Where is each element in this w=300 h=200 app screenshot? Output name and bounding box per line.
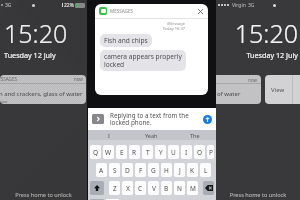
staticText: R <box>132 148 137 157</box>
button[interactable]: S <box>109 163 120 177</box>
staticText: K <box>190 166 195 175</box>
button[interactable]: W <box>103 145 114 159</box>
staticText: Press home to unlock <box>216 191 300 199</box>
button[interactable]: B <box>161 181 172 195</box>
button[interactable]: U <box>168 145 179 159</box>
staticText: S <box>113 166 117 175</box>
button[interactable]: P <box>207 145 214 159</box>
staticText: G <box>151 166 156 175</box>
button[interactable]: H <box>161 163 172 177</box>
staticText: View <box>271 86 285 94</box>
button[interactable]: R <box>129 145 140 159</box>
staticText: H <box>164 166 169 175</box>
staticText: F <box>139 166 143 175</box>
button[interactable]: Close <box>196 7 205 16</box>
button[interactable]: C <box>135 181 146 195</box>
button[interactable]: T <box>142 145 153 159</box>
button[interactable]: I <box>88 130 130 140</box>
button[interactable]: MESSAGES <box>0 75 86 104</box>
button[interactable]: Y <box>155 145 166 159</box>
button[interactable]: V <box>148 181 159 195</box>
staticText: Tuesday 12 July <box>4 50 56 60</box>
staticText: P <box>209 148 213 157</box>
staticText: 15:20 <box>4 16 68 50</box>
button[interactable]: M <box>187 181 198 195</box>
staticText: Replying to a text from the locked phone… <box>110 111 200 127</box>
staticText: Virgin <box>232 2 246 9</box>
button[interactable]: K <box>187 163 198 177</box>
staticText: I <box>185 148 188 157</box>
staticText: L <box>204 166 208 175</box>
staticText: M <box>190 184 196 193</box>
staticText: Fish and chips <box>104 36 148 45</box>
staticText: Today 16:37 <box>95 26 185 31</box>
staticText: E <box>120 148 124 157</box>
staticText: now <box>0 99 8 104</box>
staticText: 15:20 <box>216 16 298 50</box>
staticText: 3G <box>248 2 255 9</box>
staticText: W <box>105 148 112 157</box>
staticText: V <box>152 184 156 193</box>
staticText: B <box>164 184 169 193</box>
staticText: Y <box>159 148 163 157</box>
staticText: O <box>197 148 203 157</box>
staticText: Tuesday 12 July <box>216 50 298 60</box>
staticText: Press home to unlock <box>0 191 87 199</box>
staticText: n and crackers, glass of water <box>0 90 83 98</box>
button[interactable]: Shift <box>90 181 104 195</box>
staticText: Z <box>113 184 117 193</box>
button[interactable]: I <box>181 145 192 159</box>
button[interactable]: G <box>148 163 159 177</box>
button[interactable]: A <box>96 163 107 177</box>
button[interactable]: L <box>200 163 211 177</box>
staticText: MESSAGES <box>0 76 18 82</box>
button[interactable]: The <box>173 130 216 140</box>
staticText: Yeah <box>145 132 158 139</box>
staticText: MESSAGES <box>110 8 134 14</box>
staticText: now <box>74 76 83 82</box>
staticText: X <box>126 184 130 193</box>
button[interactable]: Backspace <box>203 181 214 195</box>
button[interactable]: O <box>194 145 205 159</box>
button[interactable]: X <box>122 181 133 195</box>
button[interactable]: Send <box>203 115 212 124</box>
button[interactable]: now <box>216 75 261 104</box>
button[interactable]: Yeah <box>130 130 173 140</box>
staticText: N <box>177 184 182 193</box>
button[interactable]: Q <box>90 145 101 159</box>
staticText: J <box>179 166 181 175</box>
staticText: T <box>146 148 150 157</box>
staticText: I <box>108 132 110 139</box>
button[interactable]: F <box>135 163 146 177</box>
staticText: now <box>216 77 257 83</box>
staticText: iMessage <box>95 21 185 26</box>
staticText: D <box>125 166 130 175</box>
staticText: camera appears properly locked <box>104 52 182 69</box>
button[interactable]: J <box>174 163 185 177</box>
button[interactable]: Z <box>109 181 120 195</box>
staticText: 22% <box>64 2 74 9</box>
staticText: Q <box>93 148 99 157</box>
button[interactable]: N <box>174 181 185 195</box>
button[interactable]: View <box>265 75 300 104</box>
staticText: A <box>99 166 104 175</box>
button[interactable]: E <box>116 145 127 159</box>
staticText: of water <box>217 90 241 98</box>
button[interactable]: Expand <box>92 114 104 124</box>
staticText: 3G <box>5 2 12 9</box>
staticText: The <box>190 132 200 139</box>
button[interactable]: D <box>122 163 133 177</box>
staticText: U <box>171 148 176 157</box>
staticText: C <box>138 184 143 193</box>
